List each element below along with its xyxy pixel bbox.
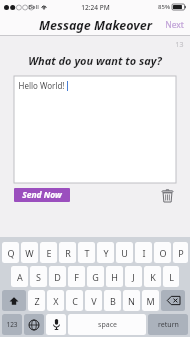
button[interactable]: J — [125, 266, 142, 287]
button[interactable]: W — [21, 242, 38, 263]
button[interactable]: Z — [28, 290, 45, 311]
staticText: Next — [165, 19, 184, 31]
button[interactable]: T — [78, 242, 95, 263]
staticText: What do you want to say? — [28, 53, 162, 68]
staticText: L — [169, 271, 174, 283]
staticText: S — [36, 271, 41, 283]
button[interactable]: Next — [159, 16, 190, 34]
staticText: C — [72, 295, 78, 307]
button[interactable]: S — [30, 266, 47, 287]
button[interactable]: U — [116, 242, 133, 263]
staticText: V — [91, 295, 97, 307]
staticText: return — [158, 320, 179, 330]
staticText: K — [150, 271, 156, 283]
button[interactable]: N — [123, 290, 140, 311]
button[interactable]: K — [144, 266, 161, 287]
button[interactable]: Q — [2, 242, 19, 263]
staticText: 123 — [6, 320, 18, 329]
staticText: P — [178, 247, 184, 259]
button[interactable]: O — [154, 242, 171, 263]
staticText: J — [132, 271, 135, 283]
staticText: Send Now — [22, 189, 62, 201]
button[interactable]: B — [104, 290, 121, 311]
button[interactable]: F — [68, 266, 85, 287]
staticText: 13 — [175, 40, 184, 50]
staticText: I — [142, 247, 146, 259]
button[interactable]: R — [59, 242, 76, 263]
button[interactable]: H — [106, 266, 123, 287]
button[interactable]: 123 — [2, 314, 22, 335]
button[interactable]: G — [87, 266, 104, 287]
button[interactable]: I — [135, 242, 152, 263]
button[interactable]: X — [47, 290, 64, 311]
staticText: H — [111, 271, 118, 283]
button[interactable]: V — [85, 290, 102, 311]
button[interactable]: return — [148, 314, 188, 335]
staticText: A — [17, 271, 23, 283]
staticText: M — [146, 295, 155, 307]
staticText: Bell — [28, 3, 39, 11]
button[interactable]: D — [49, 266, 66, 287]
button[interactable]: Send Now — [14, 188, 70, 202]
staticText: Y — [103, 247, 109, 259]
staticText: T — [84, 247, 90, 259]
staticText: F — [74, 271, 79, 283]
button[interactable]: P — [173, 242, 188, 263]
button[interactable]: Switch keyboard — [24, 314, 44, 335]
button[interactable]: space — [68, 314, 146, 335]
staticText: B — [110, 295, 116, 307]
button[interactable]: Shift — [2, 290, 26, 311]
staticText: E — [46, 247, 52, 259]
staticText: G — [92, 271, 99, 283]
staticText: D — [54, 271, 61, 283]
button[interactable]: Delete — [158, 186, 176, 204]
button[interactable]: Backspace — [161, 290, 185, 311]
staticText: O — [159, 247, 167, 259]
staticText: 12:24 PM — [81, 3, 110, 12]
staticText: R — [65, 247, 71, 259]
staticText: Message Makeover — [39, 17, 152, 34]
staticText: Q — [7, 247, 15, 259]
button[interactable]: A — [11, 266, 28, 287]
button[interactable]: Y — [97, 242, 114, 263]
staticText: U — [121, 247, 128, 259]
staticText: Hello World! — [18, 80, 65, 91]
staticText: Z — [34, 295, 40, 307]
staticText: space — [98, 320, 117, 330]
staticText: W — [25, 247, 34, 259]
button[interactable]: Dictate — [46, 314, 66, 335]
button[interactable]: C — [66, 290, 83, 311]
staticText: X — [53, 295, 59, 307]
button[interactable]: L — [163, 266, 179, 287]
button[interactable]: E — [40, 242, 57, 263]
staticText: 85% — [158, 3, 170, 11]
button[interactable]: Hello World! — [14, 76, 176, 183]
button[interactable]: M — [142, 290, 159, 311]
staticText: N — [128, 295, 135, 307]
